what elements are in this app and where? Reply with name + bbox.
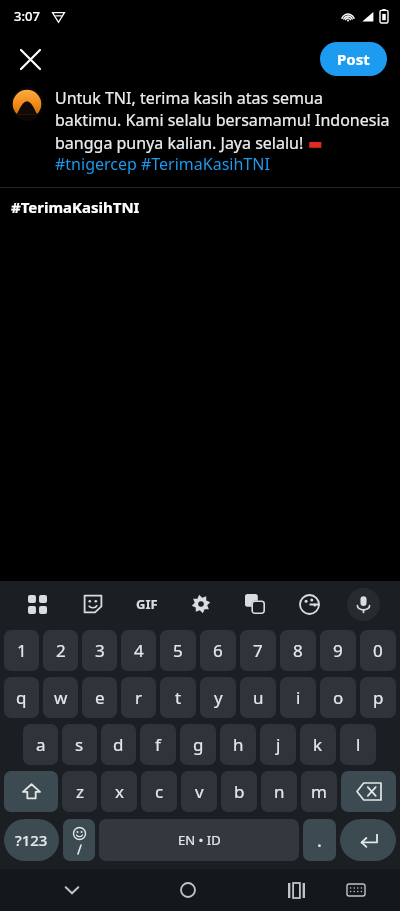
button[interactable]: v (181, 771, 217, 812)
button[interactable]: 0 (360, 630, 396, 671)
staticText: . (317, 828, 322, 853)
button[interactable]: t (160, 677, 196, 718)
button[interactable]: o (320, 677, 356, 718)
button[interactable]: s (62, 724, 97, 765)
staticText: 1 (17, 639, 27, 662)
staticText: Post (337, 49, 370, 69)
button[interactable]: g (180, 724, 216, 765)
staticText: y (214, 686, 223, 709)
staticText: d (113, 733, 124, 756)
button[interactable]: Translate (228, 581, 282, 627)
button[interactable]: i (280, 677, 316, 718)
button[interactable]: z (62, 771, 97, 812)
other: Backspace (357, 783, 381, 800)
staticText: q (16, 686, 27, 709)
button[interactable]: b (221, 771, 257, 812)
staticText: 8 (293, 639, 303, 662)
button[interactable]: key (4, 771, 58, 812)
staticText: 4 (134, 639, 144, 662)
staticText: ?123 (15, 830, 48, 850)
staticText: e (95, 686, 105, 709)
button[interactable]: m (301, 771, 337, 812)
button[interactable]: key (341, 771, 396, 812)
staticText: 2 (56, 639, 66, 662)
button[interactable]: f (140, 724, 176, 765)
staticText: GIF (136, 595, 158, 613)
button[interactable]: Themes (282, 581, 336, 627)
button[interactable]: p (360, 677, 396, 718)
button[interactable]: Post (320, 42, 387, 76)
staticText: t (175, 686, 182, 709)
staticText: #TerimaKasihTNI (11, 197, 140, 217)
button[interactable]: . (303, 819, 336, 861)
button[interactable]: d (101, 724, 136, 765)
button[interactable]: EN • ID (99, 819, 299, 861)
button[interactable]: w (43, 677, 78, 718)
button[interactable]: key (340, 819, 396, 861)
button[interactable]: Apps (10, 581, 65, 627)
other: Shift (22, 782, 41, 801)
button[interactable]: key (63, 819, 95, 861)
button[interactable]: q (4, 677, 39, 718)
staticText: 6 (213, 639, 223, 662)
button[interactable]: Voice input (336, 581, 390, 627)
staticText: 3 (95, 639, 105, 662)
staticText: r (135, 686, 143, 709)
staticText: f (155, 733, 161, 756)
button[interactable]: k (300, 724, 336, 765)
button[interactable]: Home (156, 869, 220, 911)
staticText: a (36, 733, 46, 756)
staticText: 0 (373, 639, 383, 662)
staticText: c (155, 780, 164, 803)
staticText: b (234, 780, 245, 803)
button[interactable]: 1 (4, 630, 39, 671)
button[interactable]: x (101, 771, 137, 812)
button[interactable]: 4 (121, 630, 156, 671)
staticText: n (274, 780, 285, 803)
button[interactable]: Hide keyboard (40, 869, 104, 911)
button[interactable]: #TerimaKasihTNI (0, 188, 400, 226)
staticText: s (75, 733, 84, 756)
button[interactable]: u (240, 677, 276, 718)
button[interactable]: ?123 (4, 819, 59, 861)
staticText: 3:07 (14, 7, 40, 25)
button[interactable]: 7 (240, 630, 276, 671)
staticText: u (253, 686, 264, 709)
button[interactable]: 2 (43, 630, 78, 671)
button[interactable]: y (200, 677, 236, 718)
button[interactable]: 5 (160, 630, 196, 671)
staticText: 7 (253, 639, 263, 662)
button[interactable]: Recent apps (264, 869, 328, 911)
staticText: h (233, 733, 244, 756)
button[interactable]: a (23, 724, 58, 765)
button[interactable]: Close (8, 37, 52, 81)
button[interactable]: Settings (174, 581, 228, 627)
button[interactable]: e (82, 677, 117, 718)
staticText: g (193, 733, 204, 756)
button[interactable]: r (121, 677, 156, 718)
button[interactable]: l (340, 724, 376, 765)
button[interactable]: 3 (82, 630, 117, 671)
staticText: k (313, 733, 323, 756)
staticText: 9 (333, 639, 343, 662)
button[interactable]: 6 (200, 630, 236, 671)
staticText: Untuk TNI, terima kasih atas semua bakti… (55, 87, 390, 175)
button[interactable]: n (261, 771, 297, 812)
staticText: l (356, 733, 361, 756)
staticText: w (54, 686, 68, 709)
button[interactable]: 9 (320, 630, 356, 671)
staticText: j (276, 733, 281, 756)
button[interactable]: c (141, 771, 177, 812)
button[interactable]: Switch keyboard (328, 869, 384, 911)
staticText: p (373, 686, 384, 709)
button[interactable]: h (220, 724, 256, 765)
other: Enter (358, 830, 378, 850)
button[interactable]: Stickers (65, 581, 120, 627)
button[interactable]: 8 (280, 630, 316, 671)
staticText: v (195, 780, 204, 803)
staticText: z (76, 780, 84, 803)
button[interactable]: j (260, 724, 296, 765)
staticText: o (333, 686, 344, 709)
staticText: x (115, 780, 124, 803)
button[interactable]: GIF (120, 581, 174, 627)
